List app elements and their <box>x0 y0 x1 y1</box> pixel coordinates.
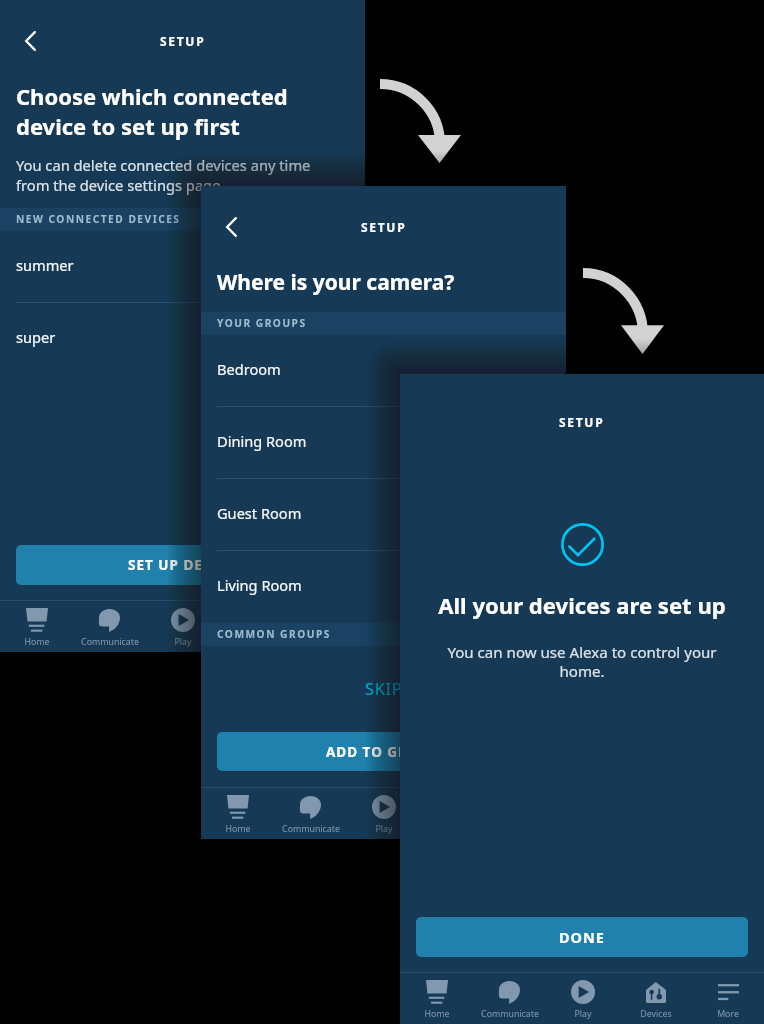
button[interactable]: Back <box>210 206 252 248</box>
staticText: SETUP <box>361 219 407 235</box>
staticText: Choose which connected device to set up … <box>16 81 288 141</box>
staticText: You can now use Alexa to control your ho… <box>422 642 742 682</box>
staticText: All your devices are set up <box>400 590 764 620</box>
staticText: Play <box>174 636 192 648</box>
staticText: Devices <box>640 1008 672 1020</box>
button[interactable]: Home <box>400 973 473 1024</box>
button[interactable]: Play <box>347 788 420 839</box>
staticText: Bedroom <box>217 359 281 379</box>
staticText: NEW CONNECTED DEVICES <box>16 212 181 226</box>
button[interactable]: Play <box>546 973 619 1024</box>
staticText: Devices <box>240 636 272 648</box>
button[interactable]: Guest Room <box>201 479 566 551</box>
button[interactable]: Dining Room <box>201 407 566 479</box>
button[interactable]: SKIP <box>341 670 427 706</box>
staticText: SETUP <box>559 414 605 430</box>
button[interactable]: DONE <box>416 917 748 957</box>
button[interactable]: Communicate <box>274 788 347 839</box>
staticText: Play <box>574 1008 592 1020</box>
staticText: Communicate <box>481 1008 539 1020</box>
staticText: Communicate <box>282 823 340 835</box>
button[interactable]: Back <box>9 20 51 62</box>
button[interactable]: SET UP DEVICE <box>16 545 349 585</box>
button[interactable]: Home <box>201 788 274 839</box>
button[interactable]: summer <box>0 231 365 303</box>
button[interactable]: Communicate <box>73 601 146 652</box>
staticText: More <box>318 636 340 648</box>
staticText: SKIP <box>365 677 403 699</box>
staticText: ADD TO GROUP <box>326 743 441 761</box>
staticText: Home <box>225 823 251 835</box>
staticText: Guest Room <box>217 503 302 523</box>
staticText: You can delete connected devices any tim… <box>16 155 311 196</box>
staticText: More <box>717 1008 739 1020</box>
staticText: Communicate <box>81 636 139 648</box>
button[interactable]: More <box>292 601 365 652</box>
button[interactable]: Living Room <box>201 551 566 623</box>
staticText: Living Room <box>217 575 302 595</box>
staticText: summer <box>16 255 74 275</box>
button[interactable]: super <box>0 303 365 375</box>
staticText: SETUP <box>160 33 206 49</box>
staticText: YOUR GROUPS <box>217 316 307 330</box>
staticText: Home <box>24 636 50 648</box>
staticText: SET UP DEVICE <box>128 556 238 574</box>
button[interactable]: Play <box>146 601 219 652</box>
button[interactable]: Devices <box>619 973 692 1024</box>
button[interactable]: Bedroom <box>201 335 566 407</box>
staticText: DONE <box>559 927 605 947</box>
staticText: Home <box>424 1008 450 1020</box>
button[interactable]: Home <box>0 601 73 652</box>
staticText: Dining Room <box>217 431 307 451</box>
button[interactable]: ADD TO GROUP <box>217 732 550 771</box>
staticText: Play <box>375 823 393 835</box>
staticText: Where is your camera? <box>217 268 455 297</box>
staticText: super <box>16 327 56 347</box>
staticText: COMMON GROUPS <box>217 627 331 641</box>
button[interactable]: Communicate <box>473 973 546 1024</box>
button[interactable]: Devices <box>219 601 292 652</box>
button[interactable]: More <box>692 973 764 1024</box>
